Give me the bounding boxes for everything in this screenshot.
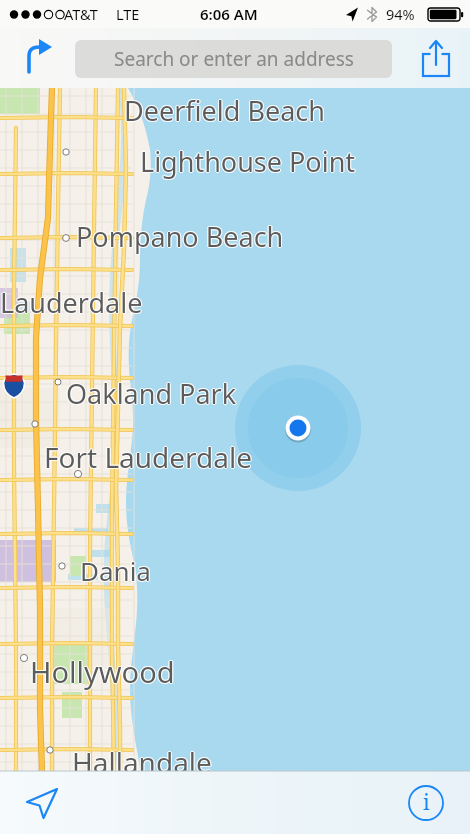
staticText: Lighthouse Point [139,143,355,180]
staticText: Lighthouse Point [140,143,356,180]
staticText: Search or enter an address [114,46,354,72]
staticText: Pompano Beach [75,218,283,255]
button[interactable]: Directions [8,32,66,84]
staticText: Hallandale [73,743,213,781]
staticText: Hollywood [31,652,176,691]
staticText: Dania [80,554,151,589]
button[interactable]: Deerfield Beach [0,88,470,771]
staticText: 6:06 AM [200,4,258,24]
button[interactable]: Info [402,779,450,827]
staticText: Pompano Beach [76,217,284,254]
staticText: Lighthouse Point [140,142,356,179]
staticText: AT&T [64,4,98,24]
staticText: Fort Lauderdale [44,438,253,476]
staticText: Lighthouse Point [140,144,356,181]
staticText: Fort Lauderdale [44,439,253,477]
staticText: Hallandale [72,744,212,782]
staticText: Lauderdale [0,285,143,322]
staticText: Dania [79,553,150,588]
staticText: Fort Lauderdale [43,438,252,476]
button[interactable]: Search or enter an address [75,40,392,78]
staticText: Deerfield Beach [123,92,324,129]
staticText: Hollywood [30,653,175,692]
button[interactable]: Share [410,32,462,84]
staticText: Hollywood [30,652,175,691]
staticText: Hallandale [71,743,211,781]
staticText: Dania [80,553,151,588]
staticText: Dania [80,552,151,587]
staticText: Hallandale [72,743,212,781]
staticText: Lauderdale [1,284,144,321]
staticText: Oakland Park [67,375,238,412]
button[interactable]: Current location [14,775,70,831]
staticText: Hallandale [72,742,212,780]
staticText: Pompano Beach [76,218,284,255]
staticText: Lauderdale [0,284,143,321]
staticText: Deerfield Beach [124,93,325,130]
staticText: Pompano Beach [77,218,285,255]
staticText: Fort Lauderdale [44,437,253,475]
staticText: 94% [386,4,415,24]
staticText: Oakland Park [66,374,237,411]
staticText: Hollywood [30,651,175,690]
staticText: Oakland Park [66,375,237,412]
staticText: Oakland Park [66,376,237,413]
staticText: Fort Lauderdale [45,438,254,476]
staticText: Lighthouse Point [141,143,357,180]
staticText: Lauderdale [0,284,142,321]
staticText: Deerfield Beach [125,92,326,129]
staticText: Deerfield Beach [124,91,325,128]
staticText: Oakland Park [65,375,236,412]
staticText: i [423,788,430,817]
staticText: Hollywood [29,652,174,691]
staticText: Dania [81,553,152,588]
staticText: Lauderdale [0,283,143,320]
staticText: Pompano Beach [76,219,284,256]
staticText: LTE [116,4,140,24]
staticText: Deerfield Beach [124,92,325,129]
